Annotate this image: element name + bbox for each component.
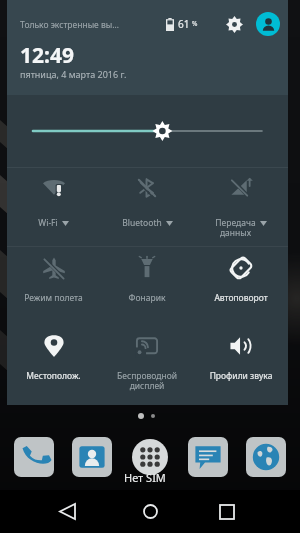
button[interactable]: Recents [200,490,254,533]
staticText: Профили звука [194,370,288,382]
button[interactable]: Apps [130,437,170,477]
staticText: % [192,19,198,28]
staticText: Передача данных [215,217,256,239]
staticText: Нет SIM [124,470,166,485]
staticText: Фонарик [100,292,194,304]
staticText: пятница, 4 марта 2016 г. [20,68,127,80]
staticText: Только экстренные вы… [20,19,119,31]
staticText: Автоповорот [194,292,288,304]
button[interactable]: Settings [223,13,245,35]
button[interactable]: Bluetooth [100,168,194,246]
button[interactable]: Messages [188,437,228,477]
button[interactable]: Местополож. [7,325,100,403]
button[interactable]: User [256,12,280,36]
button[interactable]: Профили звука [194,325,288,403]
staticText: Режим полета [7,292,100,304]
staticText: 61 [178,17,190,31]
button[interactable]: Передача данных [194,168,288,246]
button[interactable]: Back [48,490,300,533]
staticText: 12:49 [20,41,74,70]
button[interactable]: Wi-Fi [7,168,100,246]
staticText: Bluetooth [122,217,162,229]
staticText: Wi-Fi [38,217,58,229]
button[interactable]: Беспроводной дисплей [100,325,194,403]
button[interactable]: Phone [14,437,54,477]
button[interactable]: Фонарик [100,247,194,325]
staticText: Местополож. [7,370,100,382]
button[interactable]: Home [123,490,177,533]
button[interactable]: Brightness [7,95,288,167]
button[interactable]: Автоповорот [194,247,288,325]
button[interactable]: Browser [246,437,286,477]
button[interactable]: Режим полета [7,247,100,325]
staticText: Беспроводной дисплей [100,370,194,392]
button[interactable]: Contacts [72,437,112,477]
